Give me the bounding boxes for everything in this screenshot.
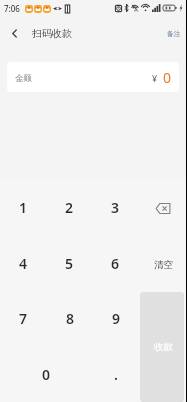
staticText: 收款 [154, 341, 173, 353]
button[interactable]: 1 [0, 180, 46, 235]
staticText: 0 [42, 365, 51, 384]
staticText: 4 [19, 254, 28, 273]
button[interactable]: 4 [0, 235, 46, 291]
staticText: 9 [112, 309, 121, 328]
staticText: 6 [111, 254, 120, 273]
button[interactable]: 收款 [140, 292, 184, 402]
staticText: 1 [19, 198, 28, 217]
staticText: 金额 [15, 73, 32, 84]
staticText: 7:06 [4, 3, 20, 14]
staticText: 2 [65, 198, 74, 217]
staticText: 0 [163, 68, 172, 87]
button[interactable]: 8 [47, 291, 93, 346]
button[interactable]: 9 [93, 291, 139, 346]
staticText: 8 [66, 309, 75, 328]
button[interactable]: 2 [46, 180, 92, 235]
button[interactable]: 6 [92, 235, 139, 291]
button[interactable]: . [93, 346, 139, 402]
staticText: 5 [65, 254, 74, 273]
button[interactable]: 金额 [7, 62, 179, 92]
staticText: 7 [19, 309, 28, 328]
button[interactable]: 3 [92, 180, 139, 235]
button[interactable]: Back [0, 19, 28, 47]
staticText: . [114, 365, 118, 384]
staticText: 扫码收款 [32, 27, 72, 40]
staticText: ¥ [152, 72, 158, 84]
button[interactable]: Backspace [139, 180, 186, 235]
button[interactable]: 7 [0, 291, 47, 346]
staticText: 备注 [167, 29, 181, 38]
button[interactable]: 0 [0, 346, 93, 402]
staticText: 清空 [154, 259, 173, 271]
button[interactable]: 清空 [139, 235, 186, 291]
button[interactable]: 备注 [158, 23, 186, 44]
staticText: 3 [111, 198, 120, 217]
button[interactable]: 5 [46, 235, 92, 291]
